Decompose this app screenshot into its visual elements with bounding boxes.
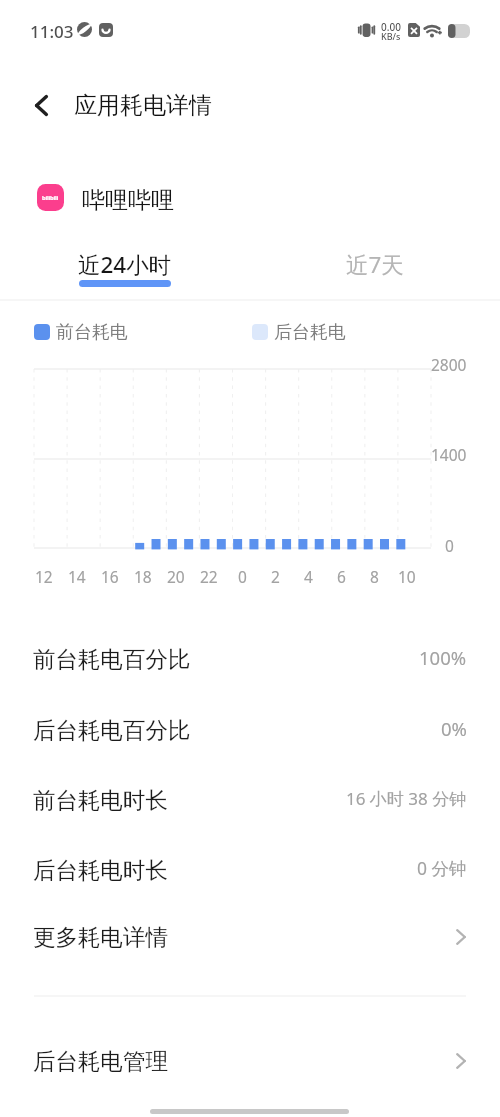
staticText: 前台耗电	[56, 321, 128, 344]
staticText: 8	[370, 566, 379, 587]
staticText: 2	[271, 566, 280, 587]
staticText: 近7天	[346, 249, 404, 280]
button[interactable]: 前台耗电时长	[0, 765, 500, 835]
staticText: 后台耗电百分比	[33, 716, 191, 744]
staticText: 0%	[441, 716, 467, 741]
staticText: 6	[337, 566, 346, 587]
staticText: 0	[445, 535, 454, 556]
staticText: 4	[304, 566, 313, 587]
staticText: 11:03	[30, 20, 74, 43]
staticText: 16	[101, 566, 119, 587]
button[interactable]: 后台耗电百分比	[0, 695, 500, 765]
staticText: 10	[398, 566, 416, 587]
staticText: 更多耗电详情	[33, 923, 168, 951]
staticText: 后台耗电时长	[33, 856, 168, 884]
staticText: 0	[238, 566, 247, 587]
button[interactable]: 后台耗电时长	[0, 835, 500, 905]
staticText: bilibili	[42, 194, 59, 202]
staticText: 近24小时	[78, 249, 172, 280]
staticText: 前台耗电百分比	[33, 645, 191, 673]
staticText: 20	[167, 566, 185, 587]
staticText: 0 分钟	[417, 856, 467, 880]
staticText: 应用耗电详情	[74, 91, 212, 120]
staticText: 14	[68, 566, 86, 587]
staticText: 0.00	[381, 20, 401, 34]
staticText: 22	[200, 566, 218, 587]
button[interactable]: 后台耗电管理	[0, 1026, 500, 1096]
staticText: 100%	[419, 645, 467, 670]
staticText: 前台耗电时长	[33, 786, 168, 814]
staticText: 后台耗电管理	[33, 1047, 168, 1075]
staticText: 哔哩哔哩	[82, 186, 174, 215]
button[interactable]: 前台耗电百分比	[0, 624, 500, 694]
staticText: 1400	[431, 444, 467, 465]
staticText: 16 小时 38 分钟	[346, 787, 467, 810]
button[interactable]: 近7天	[330, 240, 420, 288]
staticText: 后台耗电	[274, 321, 346, 344]
staticText: KB/s	[381, 30, 401, 42]
staticText: 12	[35, 566, 53, 587]
button[interactable]: Back	[19, 83, 64, 128]
staticText: 18	[134, 566, 152, 587]
button[interactable]: 更多耗电详情	[0, 902, 500, 972]
button[interactable]: 近24小时	[65, 240, 185, 298]
staticText: 2800	[431, 354, 467, 375]
